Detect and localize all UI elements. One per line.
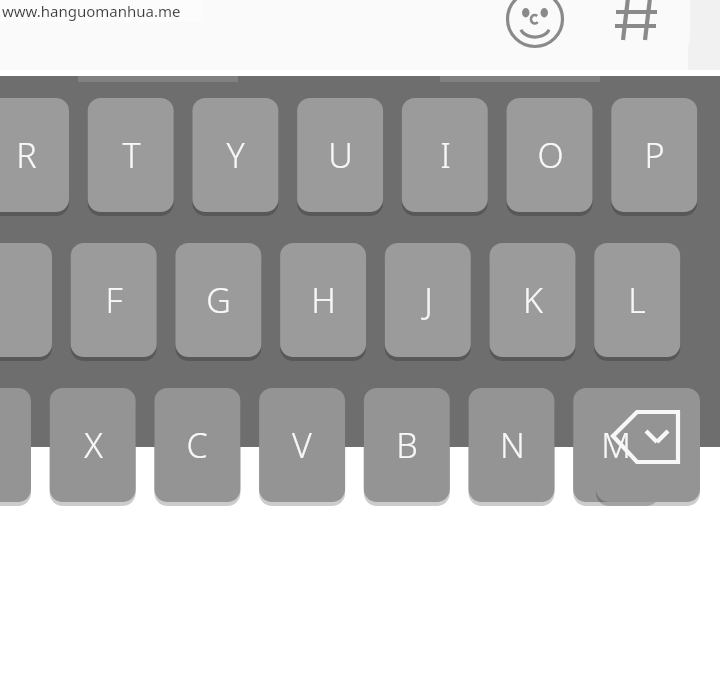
button[interactable]: N — [469, 388, 555, 502]
button[interactable]: Backspace — [596, 388, 700, 502]
button[interactable]: P — [611, 98, 697, 212]
button[interactable] — [0, 388, 31, 502]
button[interactable]: K — [490, 243, 576, 357]
staticText: Y — [226, 132, 245, 178]
button[interactable]: T — [88, 98, 174, 212]
button[interactable]: G — [175, 243, 261, 357]
staticText: L — [628, 277, 646, 323]
button[interactable] — [0, 243, 52, 357]
button[interactable]: Emoji — [503, 0, 567, 48]
staticText: U — [328, 132, 353, 178]
button[interactable]: X — [50, 388, 136, 502]
button[interactable]: Hashtag — [605, 0, 669, 48]
staticText: F — [105, 277, 123, 323]
staticText: G — [206, 277, 231, 323]
button[interactable]: Y — [192, 98, 278, 212]
button[interactable]: F — [71, 243, 157, 357]
button[interactable]: O — [507, 98, 593, 212]
button[interactable]: H — [280, 243, 366, 357]
staticText: M — [601, 422, 631, 468]
staticText: B — [396, 422, 418, 468]
button[interactable]: U — [297, 98, 383, 212]
staticText: I — [440, 132, 451, 178]
button[interactable]: M — [573, 388, 659, 502]
staticText: www.hanguomanhua.me — [2, 1, 181, 21]
button[interactable]: J — [385, 243, 471, 357]
staticText: R — [16, 132, 37, 178]
staticText: X — [84, 422, 103, 468]
staticText: C — [186, 422, 208, 468]
staticText: T — [122, 132, 141, 178]
staticText: N — [500, 422, 525, 468]
button[interactable]: C — [154, 388, 240, 502]
staticText: J — [424, 277, 433, 323]
button[interactable]: V — [259, 388, 345, 502]
button[interactable]: B — [364, 388, 450, 502]
staticText: V — [292, 422, 312, 468]
staticText: O — [537, 132, 564, 178]
staticText: P — [644, 132, 665, 178]
button[interactable]: R — [0, 98, 69, 212]
staticText: H — [311, 277, 336, 323]
button[interactable]: L — [594, 243, 680, 357]
button[interactable]: I — [402, 98, 488, 212]
staticText: K — [523, 277, 543, 323]
